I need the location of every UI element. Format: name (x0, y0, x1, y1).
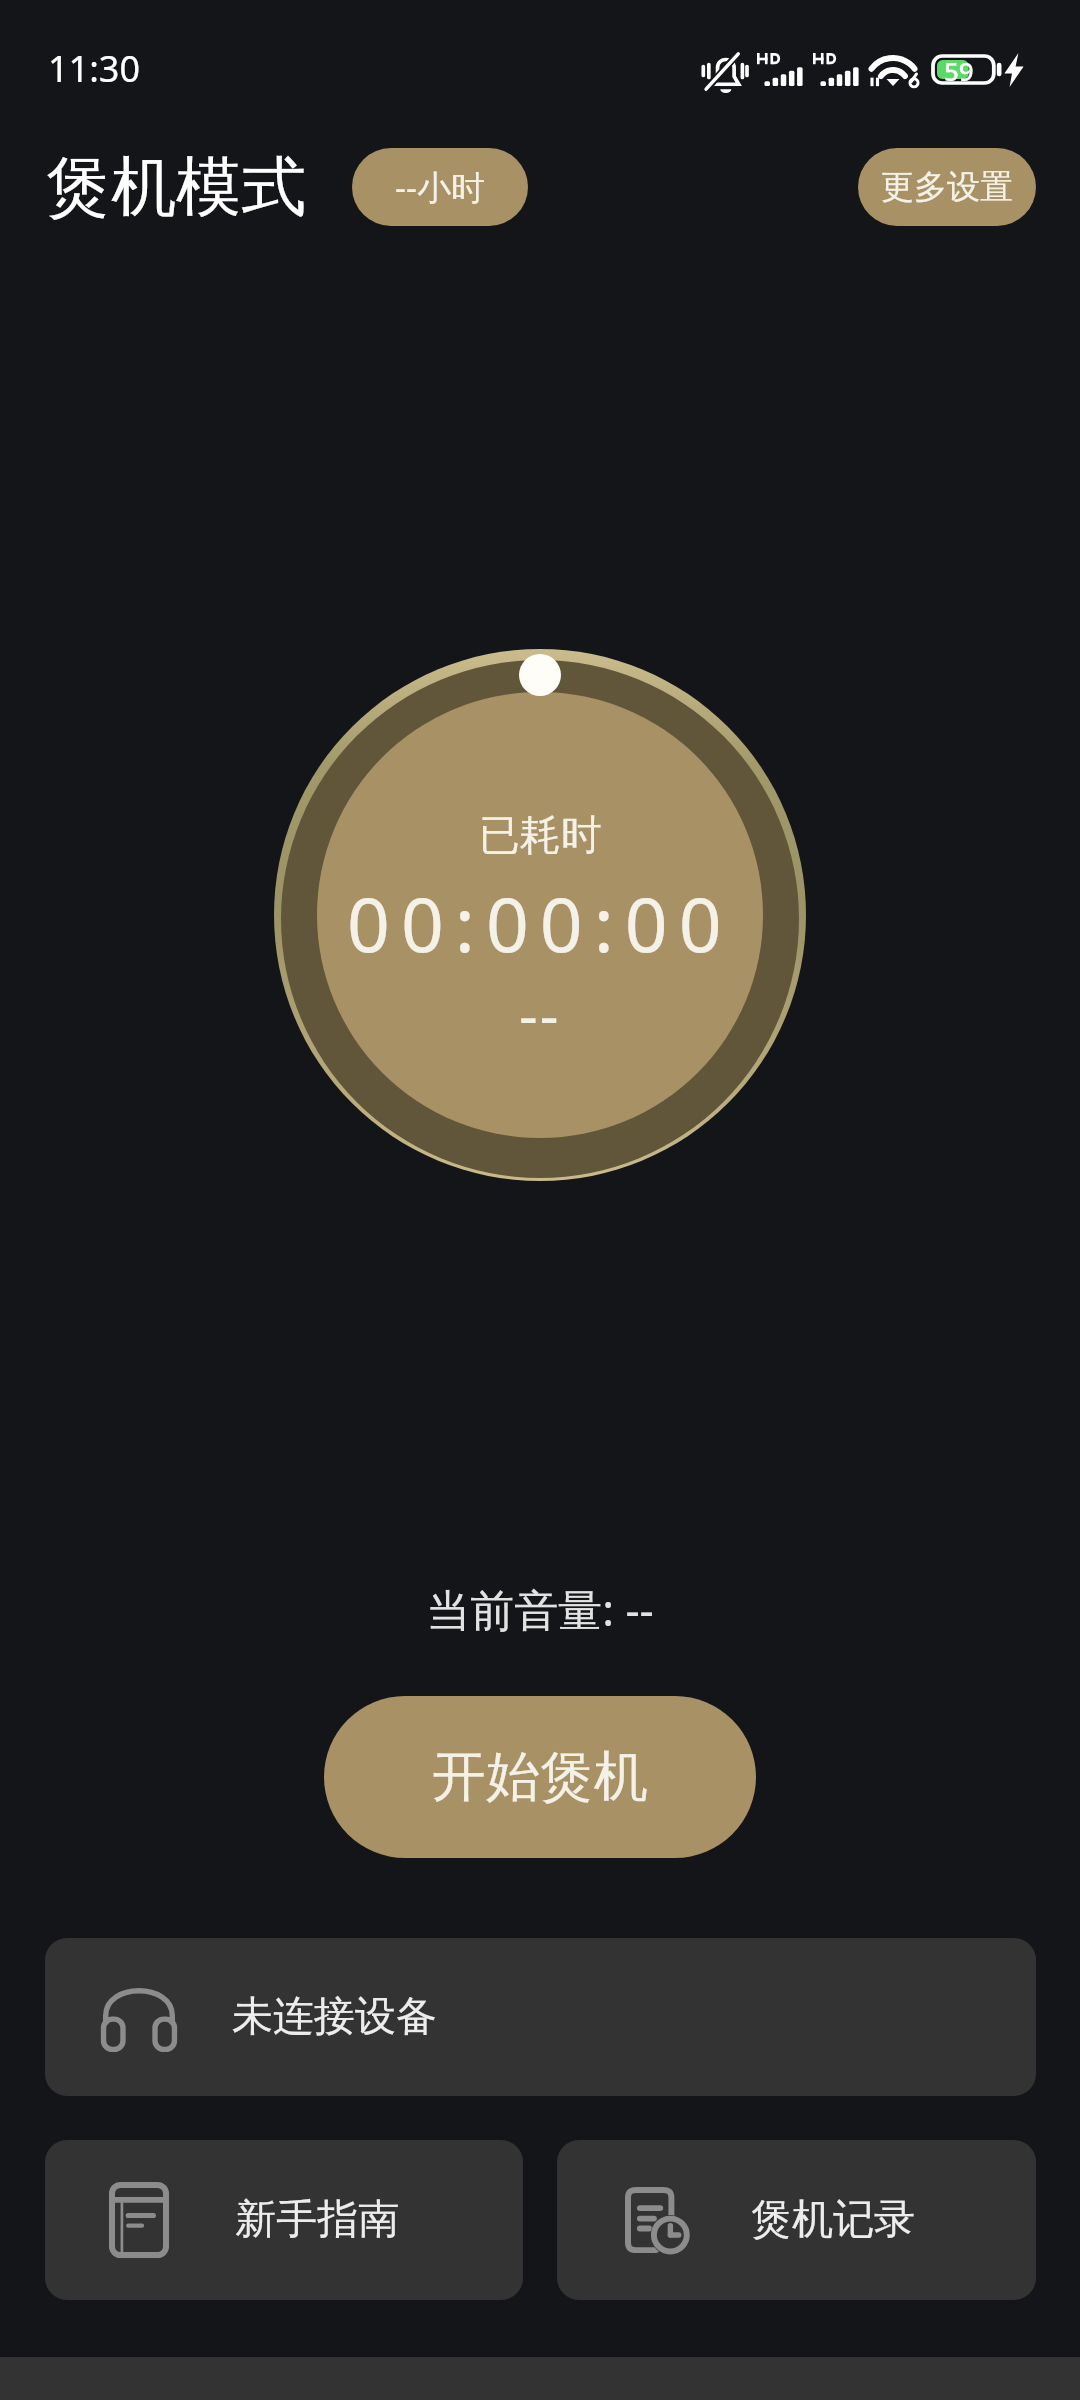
staticText: 已耗时 (479, 810, 602, 862)
staticText: -- (519, 974, 561, 1053)
button[interactable]: 新手指南 (45, 2140, 523, 2300)
staticText: 更多设置 (881, 166, 1013, 208)
button[interactable]: 煲机记录 (557, 2140, 1036, 2300)
staticText: 11:30 (48, 44, 141, 93)
button[interactable]: 开始煲机 (324, 1696, 756, 1858)
button[interactable]: --小时 (352, 148, 528, 226)
button[interactable]: 煲机进度 (270, 645, 810, 1185)
staticText: 煲机记录 (751, 2194, 915, 2246)
button[interactable]: 未连接设备 (45, 1938, 1036, 2096)
staticText: 00:00:00 (347, 872, 733, 974)
button[interactable]: 更多设置 (858, 148, 1036, 226)
staticText: --小时 (395, 164, 485, 210)
staticText: 新手指南 (235, 2194, 399, 2246)
staticText: 59 (944, 53, 974, 88)
staticText: 未连接设备 (232, 1991, 437, 2043)
staticText: 煲机模式 (46, 146, 306, 228)
staticText: 当前音量: -- (0, 1579, 1080, 1639)
staticText: 开始煲机 (432, 1743, 648, 1811)
